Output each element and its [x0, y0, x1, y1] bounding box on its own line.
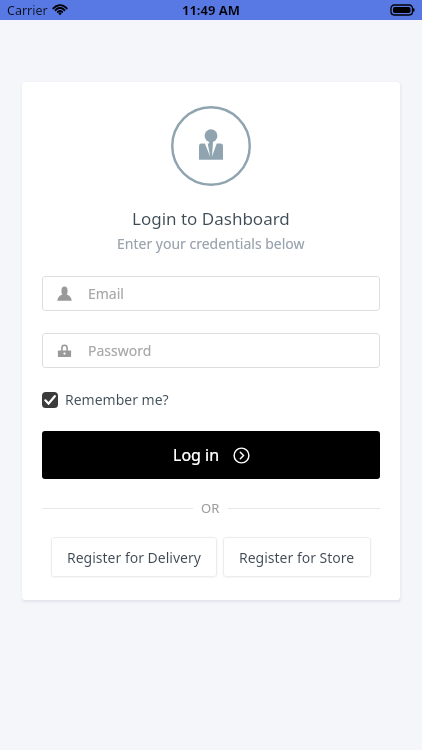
staticText: Login to Dashboard [132, 207, 290, 230]
button[interactable]: Register for Store [223, 537, 371, 577]
staticText: Password [88, 341, 152, 360]
staticText: Email [88, 284, 124, 303]
button[interactable]: Register for Delivery [51, 537, 217, 577]
staticText: OR [201, 499, 220, 517]
staticText: Register for Store [239, 548, 355, 567]
staticText: Remember me? [65, 390, 169, 409]
staticText: Carrier [7, 2, 48, 19]
button[interactable]: Email [42, 276, 380, 311]
staticText: Log in [173, 444, 220, 466]
button[interactable]: Remember me? [42, 390, 169, 409]
staticText: Enter your credentials below [117, 234, 305, 253]
button[interactable]: Log in [42, 431, 380, 479]
button[interactable]: Password [42, 333, 380, 368]
staticText: Register for Delivery [67, 548, 201, 567]
staticText: 11:49 AM [182, 1, 241, 19]
